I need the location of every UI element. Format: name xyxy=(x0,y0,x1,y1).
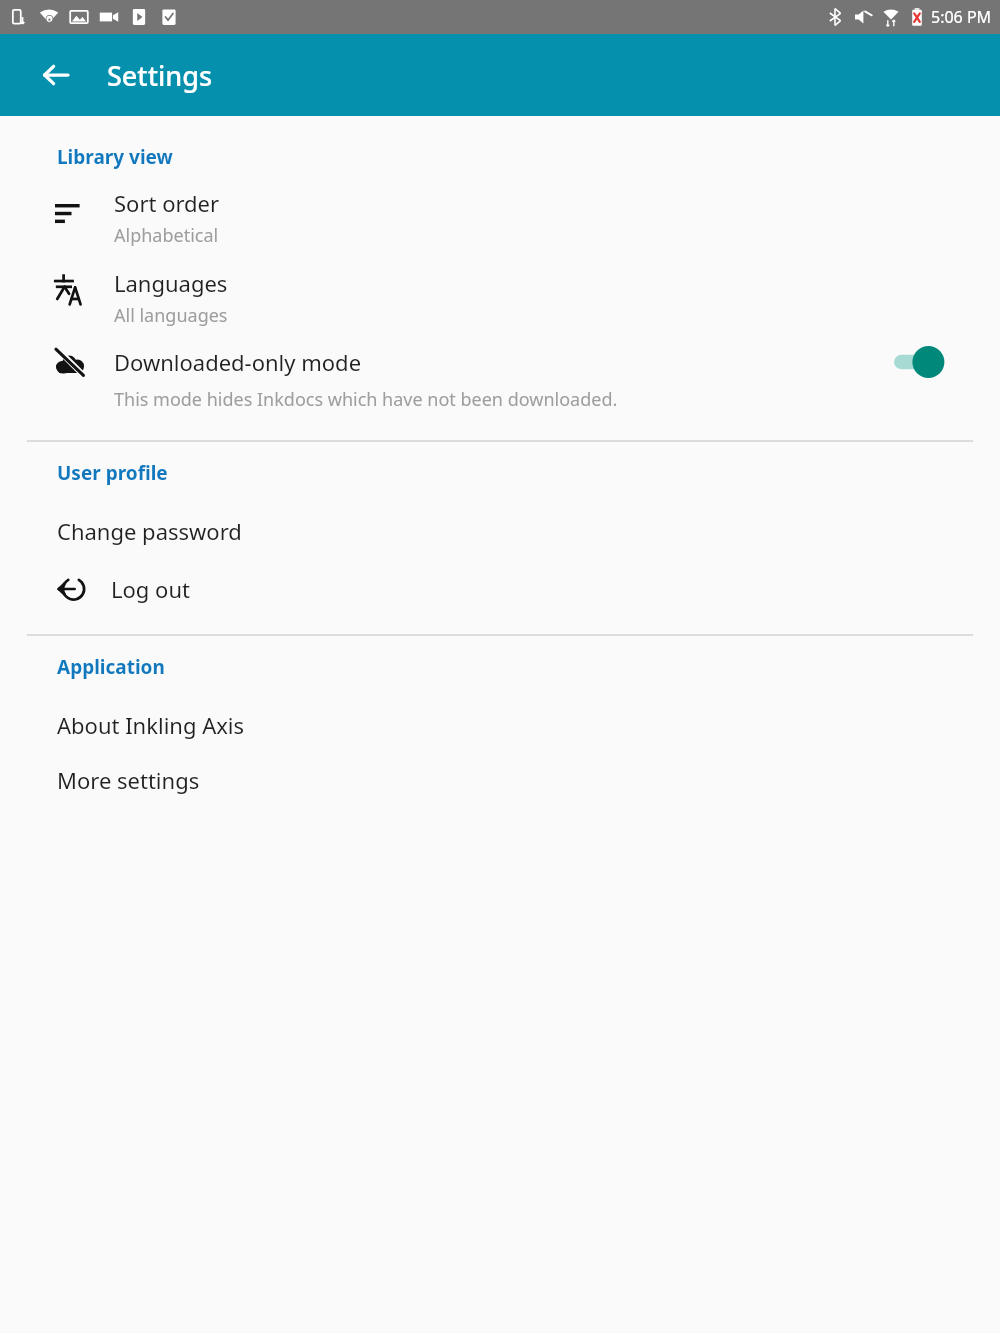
button[interactable]: Back xyxy=(32,51,80,99)
staticText: 5:06 PM xyxy=(931,6,992,28)
staticText: Sort order xyxy=(114,188,220,218)
button[interactable]: Downloaded-only mode xyxy=(0,342,1000,412)
staticText: Downloaded-only mode xyxy=(114,347,894,377)
staticText: Settings xyxy=(107,57,213,94)
button[interactable]: Languages xyxy=(0,268,1000,328)
button[interactable]: More settings xyxy=(0,765,1000,795)
staticText: About Inkling Axis xyxy=(57,710,245,740)
staticText: Application xyxy=(57,654,165,680)
button[interactable]: Sort order xyxy=(0,188,1000,248)
button[interactable]: Change password xyxy=(0,516,1000,546)
staticText: This mode hides Inkdocs which have not b… xyxy=(114,387,618,412)
staticText: Languages xyxy=(114,268,228,298)
staticText: All languages xyxy=(114,303,228,328)
staticText: Change password xyxy=(57,516,242,546)
staticText: More settings xyxy=(57,765,200,795)
button[interactable]: Downloaded-only mode toggle xyxy=(894,342,954,382)
staticText: User profile xyxy=(57,460,168,486)
staticText: Log out xyxy=(111,574,190,604)
button[interactable]: About Inkling Axis xyxy=(0,710,1000,740)
button[interactable]: Log out xyxy=(0,570,1000,608)
staticText: Alphabetical xyxy=(114,223,219,248)
staticText: Library view xyxy=(57,144,173,170)
